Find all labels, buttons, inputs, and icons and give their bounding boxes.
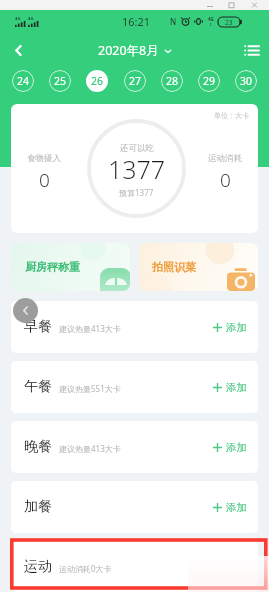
staticText: 23	[225, 18, 233, 27]
button[interactable]: 添加	[213, 501, 247, 514]
button[interactable]: 添加	[213, 381, 247, 394]
staticText: 添加	[226, 381, 247, 394]
staticText: 运动	[24, 558, 52, 576]
button[interactable]: 拍照识菜	[139, 243, 258, 291]
button[interactable]: 29	[198, 70, 220, 92]
button[interactable]: 加餐	[11, 481, 258, 533]
staticText: 4G	[208, 16, 214, 22]
staticText: 食物摄入	[27, 153, 61, 164]
staticText: 建议热量413大卡	[59, 323, 121, 334]
staticText: 建议热量413大卡	[59, 443, 121, 454]
staticText: 添加	[226, 501, 247, 514]
staticText: 4G	[15, 16, 21, 22]
button[interactable]: 运动	[11, 541, 258, 592]
staticText: 2020年8月	[98, 42, 159, 59]
staticText: 添加	[226, 321, 247, 334]
button[interactable]: Menu	[233, 36, 269, 64]
button[interactable]: 27	[124, 70, 146, 92]
staticText: 30	[240, 74, 253, 88]
staticText: 0	[220, 167, 231, 193]
button[interactable]: Back	[0, 36, 36, 64]
button[interactable]: 2020年8月	[98, 42, 172, 59]
staticText: 早餐	[24, 318, 52, 336]
button[interactable]: 28	[161, 70, 183, 92]
staticText: 24	[17, 74, 30, 88]
staticText: 1377	[108, 152, 166, 186]
staticText: 运动消耗	[208, 153, 242, 164]
staticText: 午餐	[24, 378, 52, 396]
staticText: 单位：大卡	[214, 111, 249, 120]
button[interactable]: Back	[13, 298, 38, 323]
staticText: 4G	[28, 16, 34, 22]
staticText: 16:21	[122, 14, 151, 29]
button[interactable]: 午餐	[11, 361, 258, 413]
button[interactable]: 25	[49, 70, 71, 92]
staticText: 预算1377	[119, 187, 154, 198]
button[interactable]: 早餐	[11, 301, 258, 353]
staticText: 建议热量551大卡	[59, 383, 121, 394]
button[interactable]: 添加	[213, 441, 247, 454]
staticText: 27	[129, 74, 142, 88]
staticText: 28	[166, 74, 179, 88]
button[interactable]: 26	[86, 70, 108, 92]
staticText: ↕	[209, 22, 213, 27]
staticText: 运动消耗0大卡	[59, 563, 112, 574]
button[interactable]: 添加	[213, 321, 247, 334]
staticText: 拍照识菜	[152, 260, 196, 274]
button[interactable]: 30	[235, 70, 257, 92]
staticText: 0	[39, 167, 50, 193]
staticText: 晚餐	[24, 438, 52, 456]
button[interactable]: 24	[12, 70, 34, 92]
staticText: 26	[91, 74, 104, 88]
staticText: 添加	[226, 441, 247, 454]
staticText: 厨房秤称重	[25, 260, 80, 274]
staticText: 还可以吃	[120, 143, 154, 154]
staticText: 25	[54, 74, 67, 88]
button[interactable]: 晚餐	[11, 421, 258, 473]
staticText: 加餐	[24, 498, 52, 516]
staticText: 29	[203, 74, 216, 88]
staticText: N	[170, 16, 177, 27]
button[interactable]: 厨房秤称重	[11, 243, 130, 291]
